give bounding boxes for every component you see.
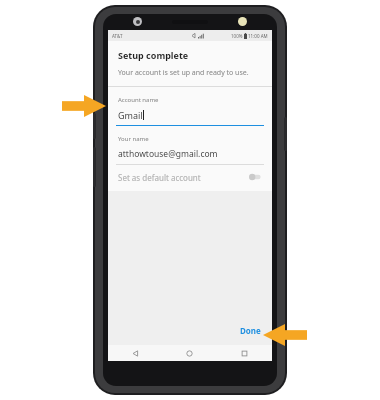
staticText: atthowtouse@gmail.com <box>118 148 218 160</box>
staticText: Your name <box>118 135 149 143</box>
button[interactable]: atthowtouse@gmail.com <box>108 143 272 165</box>
staticText: Your account is set up and ready to use. <box>118 68 249 78</box>
staticText: Done <box>240 325 261 336</box>
button[interactable]: Back <box>108 345 162 361</box>
button[interactable]: Gmail <box>108 104 272 126</box>
staticText: Account name <box>118 96 159 104</box>
button[interactable]: Done <box>235 322 266 339</box>
staticText: AT&T <box>112 33 123 39</box>
staticText: Set as default account <box>118 172 201 183</box>
button[interactable]: Set as default account <box>108 165 272 189</box>
staticText: Setup complete <box>118 49 189 61</box>
staticText: 100% <box>231 33 243 39</box>
button[interactable]: Home <box>162 345 217 361</box>
staticText: 11:00 AM <box>248 33 268 39</box>
button[interactable]: Recents <box>217 345 272 361</box>
staticText: Gmail <box>118 109 143 121</box>
